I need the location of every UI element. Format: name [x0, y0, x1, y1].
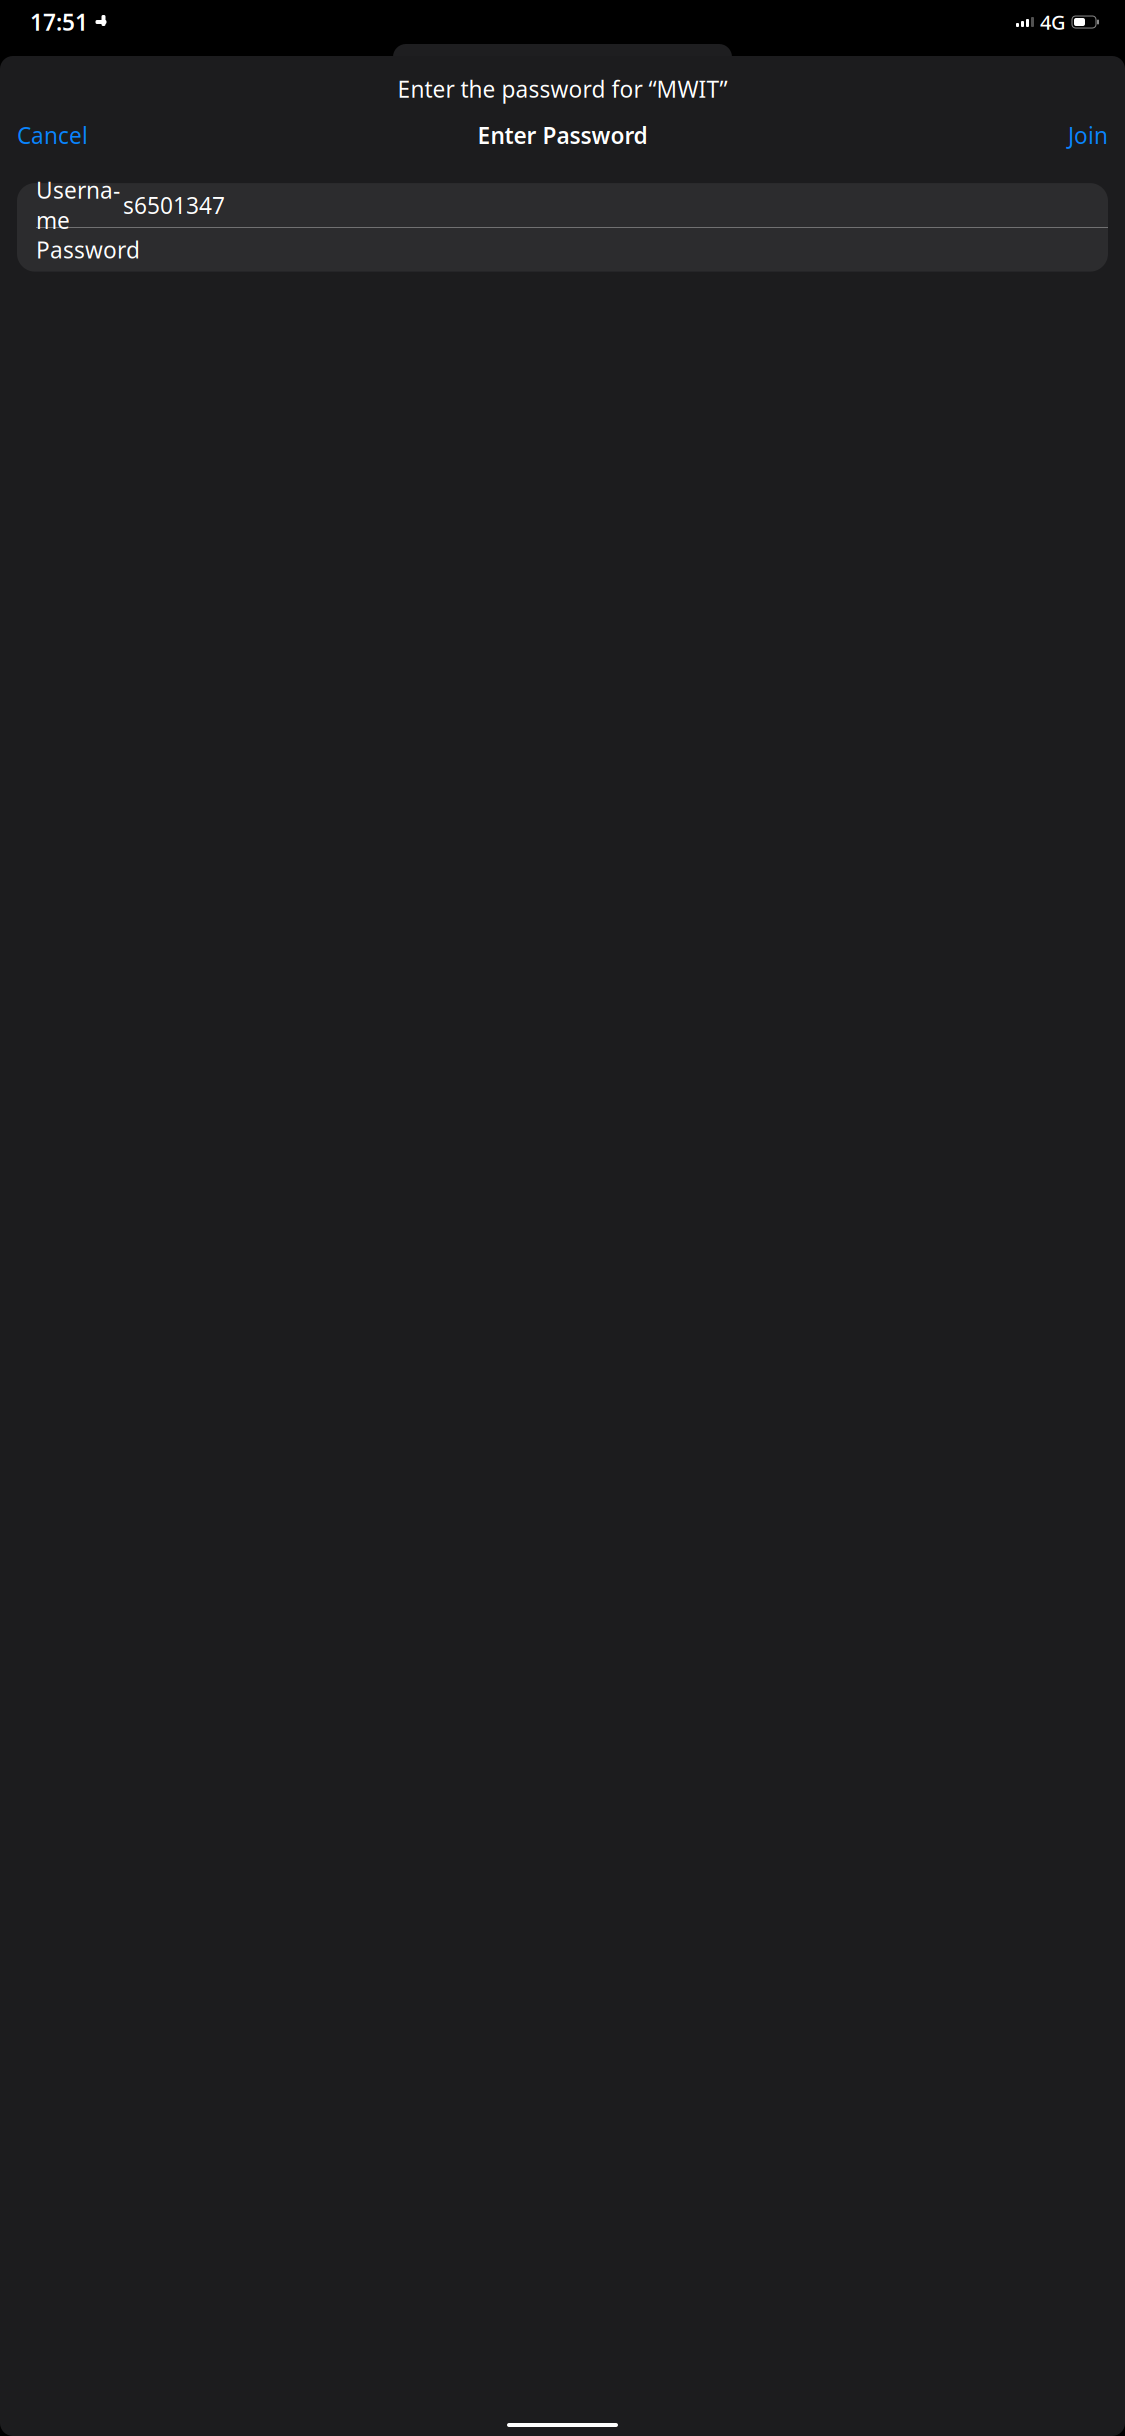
staticText: Password	[36, 235, 140, 265]
staticText: Join	[1068, 120, 1108, 150]
button[interactable]: Password	[17, 228, 1108, 272]
button[interactable]: Username	[17, 183, 1108, 227]
staticText: Username	[36, 175, 120, 235]
staticText: Enter the password for “MWIT”	[397, 74, 727, 104]
button[interactable]: Cancel	[1, 112, 104, 158]
staticText: Enter Password	[477, 120, 647, 150]
staticText: Cancel	[17, 120, 88, 150]
staticText: 17:51	[30, 7, 88, 37]
button[interactable]: Join	[1052, 112, 1124, 158]
staticText: s6501347	[123, 190, 225, 220]
staticText: 4G	[1040, 9, 1066, 35]
